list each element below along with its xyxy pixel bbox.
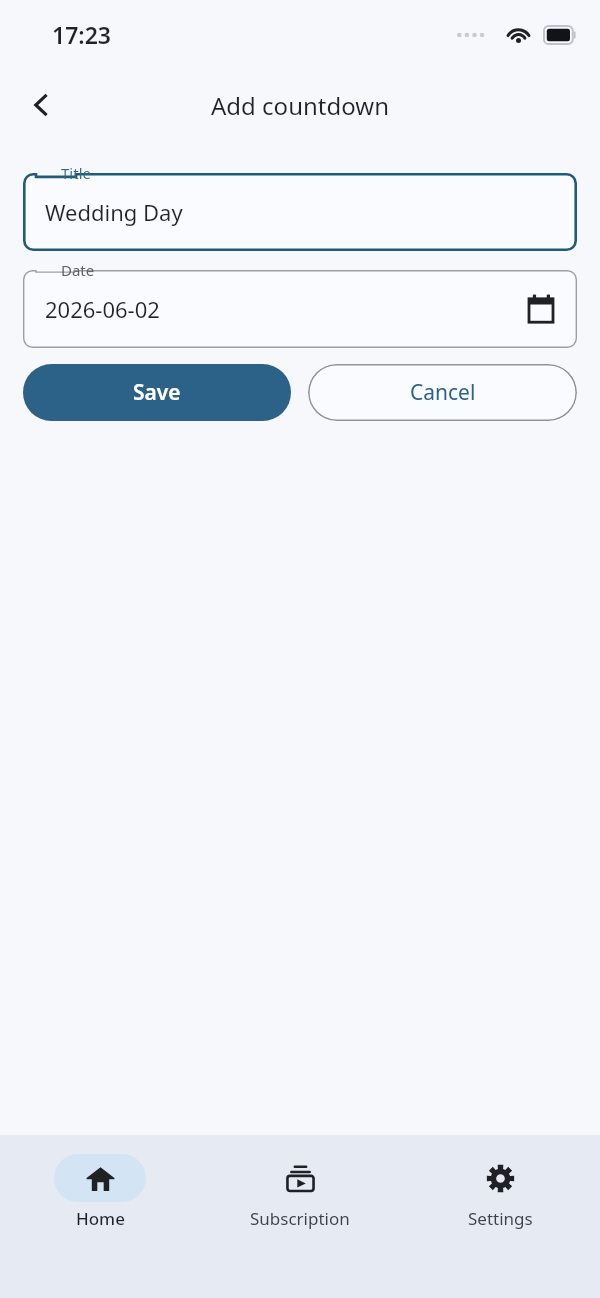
staticText: Subscription: [250, 1207, 350, 1230]
staticText: Save: [133, 378, 181, 407]
button[interactable]: [23, 173, 577, 251]
button[interactable]: Pick date: [517, 285, 565, 333]
button[interactable]: Home: [0, 1154, 200, 1230]
staticText: Settings: [468, 1207, 533, 1230]
button[interactable]: Back: [15, 79, 67, 131]
button[interactable]: Subscription: [200, 1154, 400, 1230]
staticText: Home: [76, 1207, 125, 1230]
staticText: Date: [61, 260, 95, 280]
staticText: Title: [61, 163, 91, 183]
button[interactable]: Save: [23, 364, 291, 421]
staticText: 2026-06-02: [45, 294, 160, 324]
staticText: Wedding Day: [45, 197, 183, 227]
staticText: Add countdown: [211, 89, 389, 122]
button[interactable]: [23, 270, 577, 348]
staticText: 17:23: [52, 19, 111, 50]
button[interactable]: Cancel: [308, 364, 577, 421]
staticText: Cancel: [410, 378, 476, 407]
button[interactable]: Settings: [400, 1154, 600, 1230]
